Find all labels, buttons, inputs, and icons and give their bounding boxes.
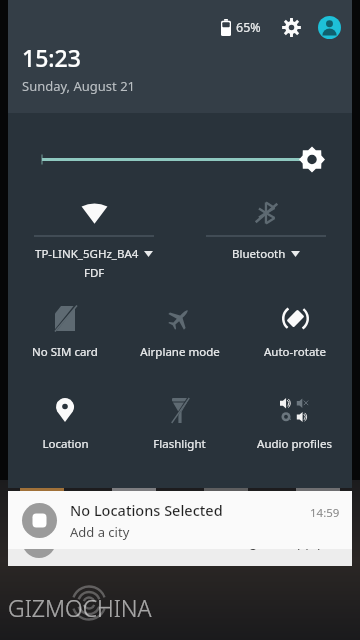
button[interactable]: No Locations Selected: [8, 491, 352, 549]
staticText: 14:59: [310, 505, 340, 521]
button[interactable]: TP-LINK_5GHz_BA4: [8, 188, 180, 288]
button[interactable]: Auto-rotate: [237, 294, 352, 372]
button[interactable]: Airplane mode: [122, 294, 237, 372]
staticText: Audio profiles: [257, 436, 332, 452]
staticText: GIZMOCHINA: [8, 592, 152, 623]
staticText: Sunday, August 21: [22, 77, 136, 95]
button[interactable]: Location: [8, 386, 122, 464]
staticText: Touch to view detailed settings for app …: [69, 532, 344, 550]
button[interactable]: User profile: [316, 14, 342, 40]
staticText: Airplane mode: [140, 344, 220, 360]
button[interactable]: Audio profiles: [237, 386, 352, 464]
button[interactable]: No SIM card: [8, 294, 122, 372]
staticText: Bluetooth: [232, 246, 286, 262]
staticText: Add a city: [70, 523, 130, 541]
staticText: FDF: [84, 265, 105, 281]
staticText: Location: [42, 436, 89, 452]
staticText: Flashlight: [153, 436, 206, 452]
button[interactable]: Flashlight: [122, 386, 237, 464]
button[interactable]: Touch to view detailed settings for app …: [8, 494, 352, 566]
button[interactable]: Settings: [278, 14, 304, 40]
staticText: No SIM card: [32, 344, 98, 360]
button[interactable]: Brightness: [8, 113, 352, 188]
staticText: TP-LINK_5GHz_BA4: [35, 246, 139, 262]
staticText: 65%: [236, 19, 261, 36]
button[interactable]: Bluetooth: [180, 188, 352, 288]
staticText: 15:23: [22, 42, 81, 73]
staticText: Auto-rotate: [264, 344, 326, 360]
staticText: No Locations Selected: [70, 500, 223, 520]
